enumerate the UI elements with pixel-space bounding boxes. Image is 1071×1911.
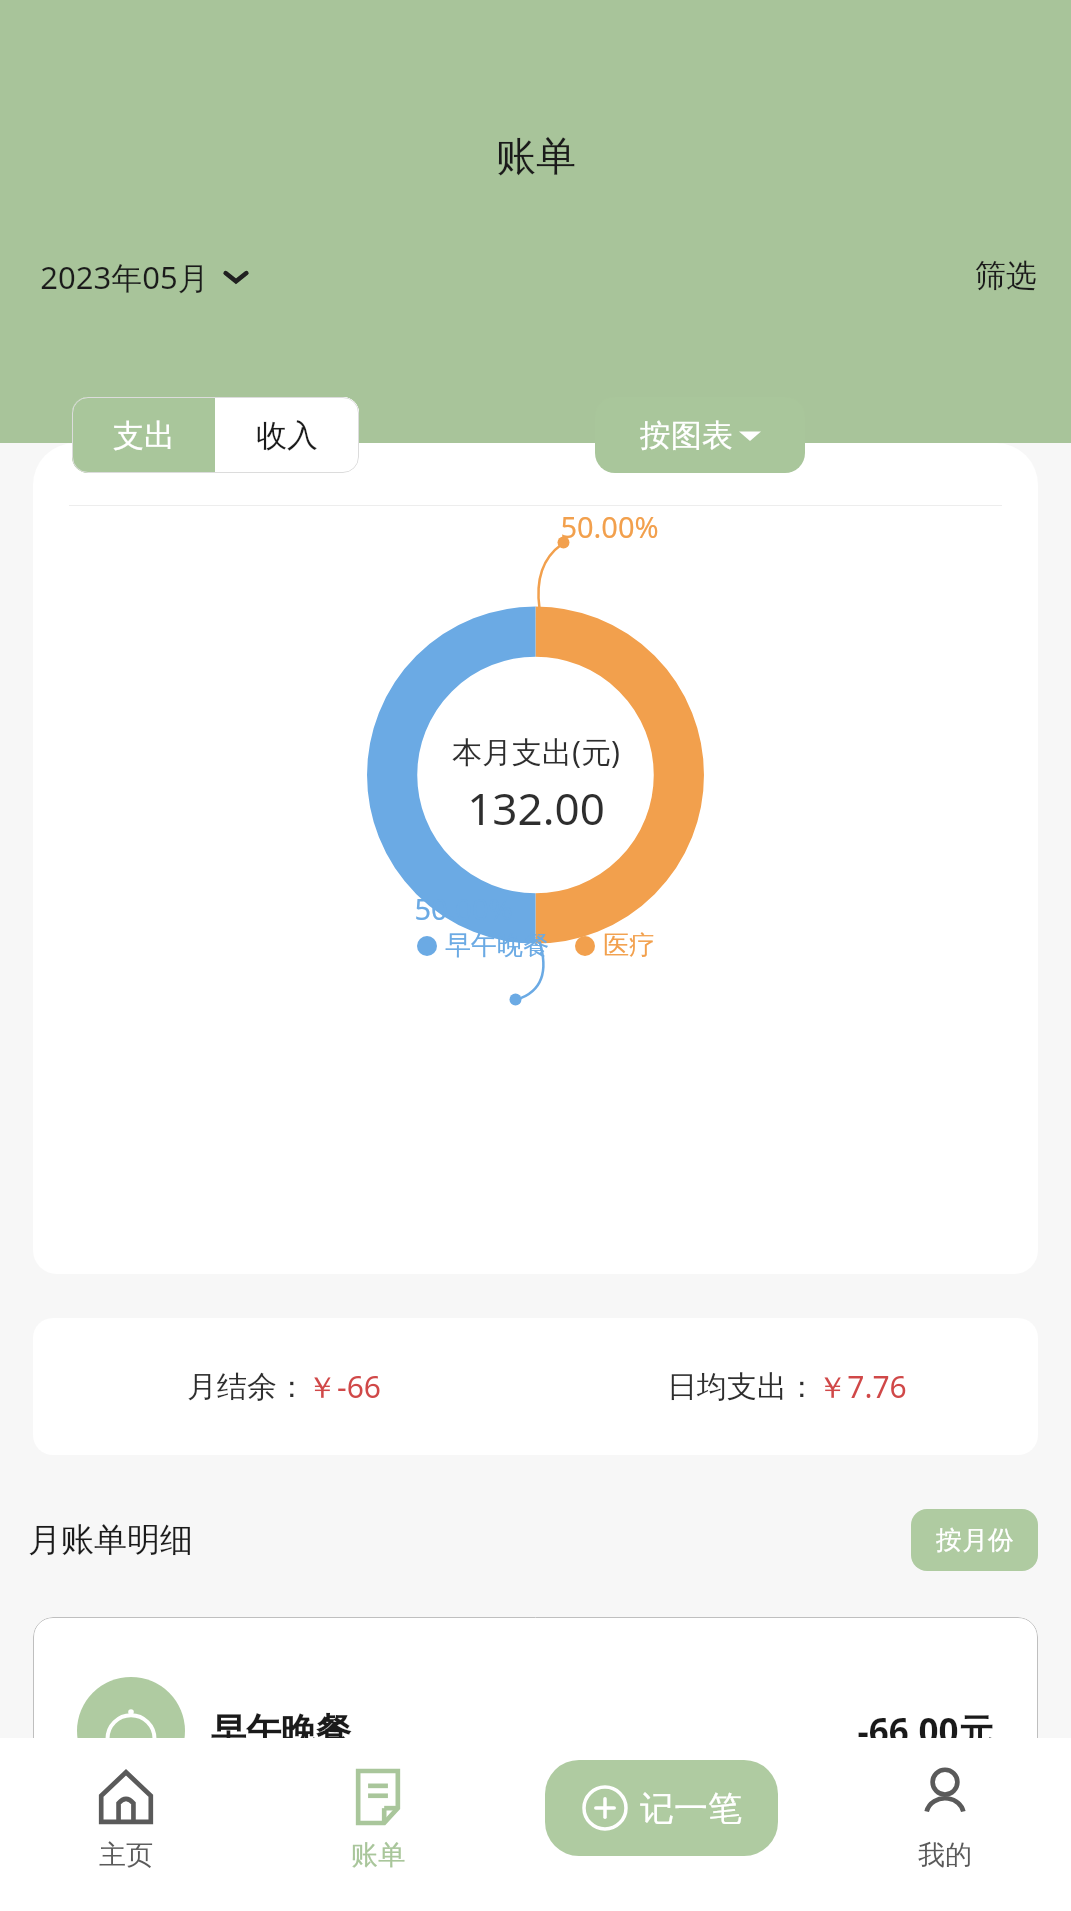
staticText: 132.00: [467, 778, 605, 838]
button[interactable]: 收入: [215, 397, 359, 473]
button[interactable]: 筛选: [961, 250, 1051, 301]
staticText: 账单: [496, 131, 576, 181]
button[interactable]: 按月份: [911, 1509, 1038, 1571]
staticText: 早午晚餐: [445, 929, 549, 962]
staticText: -66.00元: [857, 1707, 994, 1755]
button[interactable]: 早午晚餐: [33, 1617, 1038, 1807]
staticText: 我的: [918, 1838, 972, 1872]
staticText: 收入: [256, 416, 318, 455]
button[interactable]: 主页: [0, 1738, 252, 1911]
button[interactable]: 支出: [72, 397, 215, 473]
staticText: 记一笔: [640, 1787, 742, 1830]
button[interactable]: 2023年05月: [28, 250, 261, 304]
other: 主页: [95, 1766, 157, 1828]
staticText: 50.00%: [560, 507, 659, 546]
button[interactable]: 账单: [252, 1738, 504, 1911]
staticText: 账单: [351, 1838, 405, 1872]
button[interactable]: 月结余：: [33, 1318, 1038, 1455]
staticText: 2023年05月: [40, 256, 209, 298]
button[interactable]: 我的: [819, 1738, 1071, 1911]
staticText: 医疗: [603, 929, 655, 962]
staticText: ￥-66: [307, 1366, 381, 1407]
staticText: 月结余：: [187, 1368, 307, 1406]
staticText: 早午晚餐: [211, 1709, 351, 1753]
staticText: ￥7.76: [817, 1366, 907, 1407]
button[interactable]: 按图表: [595, 397, 805, 473]
staticText: 50.00%: [414, 889, 513, 928]
other: 我的: [914, 1766, 976, 1828]
other: 账单: [347, 1766, 409, 1828]
staticText: 月账单明细: [28, 1519, 193, 1561]
staticText: 按月份: [936, 1524, 1014, 1557]
staticText: 本月支出(元): [452, 731, 620, 772]
staticText: 日均支出：: [667, 1368, 817, 1406]
staticText: 按图表: [640, 416, 733, 455]
staticText: 筛选: [975, 256, 1037, 295]
button[interactable]: 记一笔: [545, 1760, 778, 1856]
staticText: 支出: [113, 416, 175, 455]
staticText: 主页: [99, 1838, 153, 1872]
